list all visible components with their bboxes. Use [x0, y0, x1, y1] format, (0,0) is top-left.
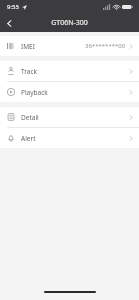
staticText: Alert [21, 134, 36, 143]
staticText: IMEI [21, 42, 35, 51]
button[interactable]: Playback [0, 82, 139, 102]
staticText: Playback [21, 88, 48, 97]
button[interactable]: Back [0, 14, 18, 32]
staticText: GT06N-300 [51, 18, 88, 28]
button[interactable]: Detail [0, 107, 139, 127]
staticText: Detail [21, 113, 39, 122]
button[interactable]: IMEI [0, 36, 139, 56]
staticText: 36********00 [85, 42, 126, 50]
button[interactable]: Track [0, 61, 139, 81]
staticText: 9:55 [7, 3, 19, 11]
staticText: Track [21, 67, 38, 76]
button[interactable]: Alert [0, 128, 139, 148]
